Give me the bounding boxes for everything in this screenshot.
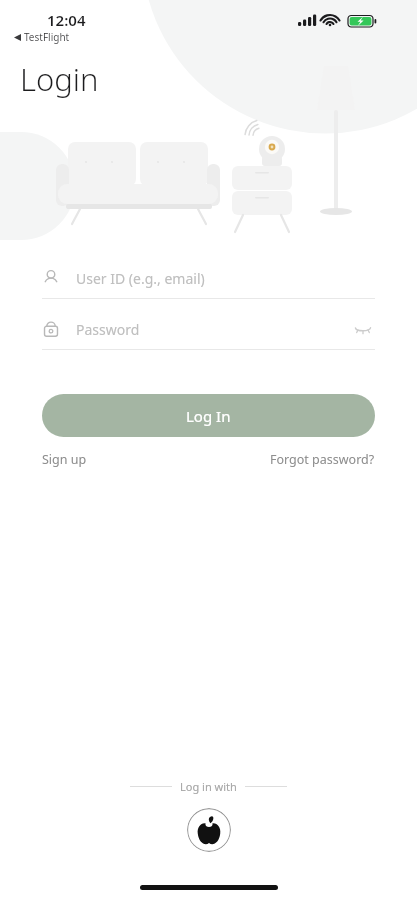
button[interactable]: Log in with Apple [187, 808, 231, 852]
staticText: Sign up [42, 451, 87, 468]
button[interactable]: Forgot password? [270, 451, 375, 468]
button[interactable]: Log In [42, 394, 375, 437]
staticText: Log In [186, 406, 231, 426]
staticText: TestFlight [24, 30, 70, 44]
button[interactable]: Show password [351, 317, 375, 341]
button[interactable]: User ID (e.g., email) [42, 258, 375, 298]
button[interactable]: Sign up [42, 451, 87, 468]
staticText: Log in with [180, 779, 237, 794]
staticText: User ID (e.g., email) [76, 269, 205, 288]
staticText: 12:04 [47, 10, 86, 30]
staticText: Forgot password? [270, 451, 375, 468]
staticText: Password [76, 320, 351, 339]
staticText: Login [20, 58, 99, 100]
button[interactable]: Password [42, 309, 375, 349]
